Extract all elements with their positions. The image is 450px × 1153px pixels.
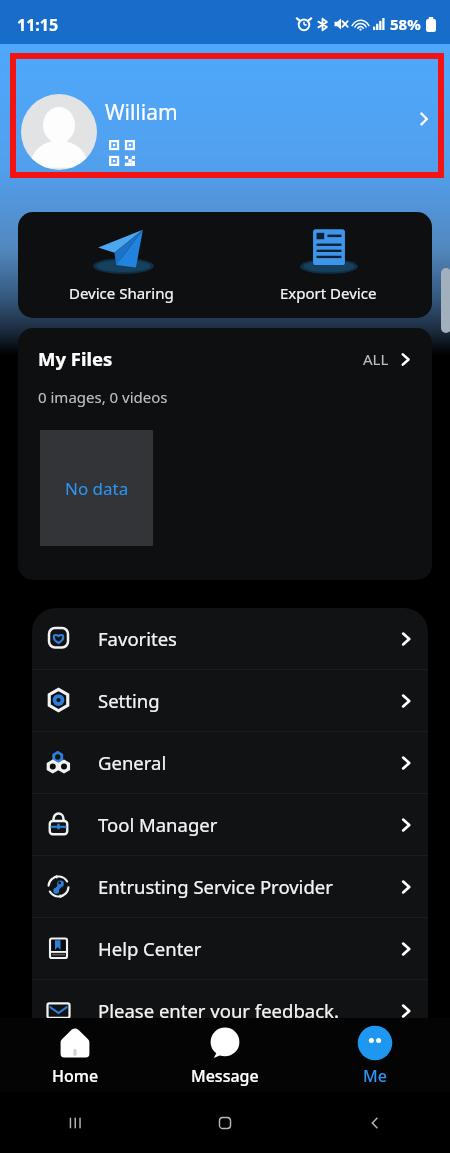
- staticText: No data: [65, 477, 129, 500]
- staticText: Please enter your feedback.: [98, 998, 339, 1023]
- button[interactable]: Please enter your feedback.: [32, 980, 428, 1041]
- button[interactable]: ALL: [363, 349, 414, 369]
- staticText: Tool Manager: [98, 812, 218, 837]
- staticText: William: [105, 98, 178, 127]
- staticText: 58%: [390, 14, 421, 34]
- staticText: Message: [191, 1065, 259, 1087]
- button[interactable]: Home: [150, 1092, 300, 1153]
- button[interactable]: Message: [150, 1018, 300, 1092]
- staticText: Device Sharing: [69, 283, 174, 303]
- button[interactable]: Tool Manager: [32, 794, 428, 855]
- staticText: ALL: [363, 349, 389, 369]
- button[interactable]: Export Device: [225, 212, 432, 318]
- staticText: My Files: [38, 346, 113, 371]
- staticText: Export Device: [280, 283, 377, 303]
- staticText: Help Center: [98, 936, 202, 961]
- staticText: Home: [52, 1065, 99, 1087]
- button[interactable]: Favorites: [32, 608, 428, 669]
- staticText: Favorites: [98, 626, 177, 651]
- staticText: General: [98, 750, 167, 775]
- staticText: 11:15: [17, 14, 59, 36]
- button[interactable]: Home: [0, 1018, 150, 1092]
- staticText: Setting: [98, 688, 160, 713]
- button[interactable]: General: [32, 732, 428, 793]
- button[interactable]: Back: [300, 1092, 450, 1153]
- button[interactable]: Me: [300, 1018, 450, 1092]
- button[interactable]: Setting: [32, 670, 428, 731]
- button[interactable]: Entrusting Service Provider: [32, 856, 428, 917]
- staticText: Entrusting Service Provider: [98, 874, 333, 899]
- button[interactable]: Device Sharing: [18, 212, 225, 318]
- staticText: Me: [363, 1065, 387, 1087]
- button[interactable]: William: [21, 73, 432, 191]
- button[interactable]: Help Center: [32, 918, 428, 979]
- button[interactable]: No data: [40, 430, 153, 546]
- button[interactable]: Recents: [0, 1092, 150, 1153]
- staticText: 0 images, 0 videos: [38, 387, 168, 407]
